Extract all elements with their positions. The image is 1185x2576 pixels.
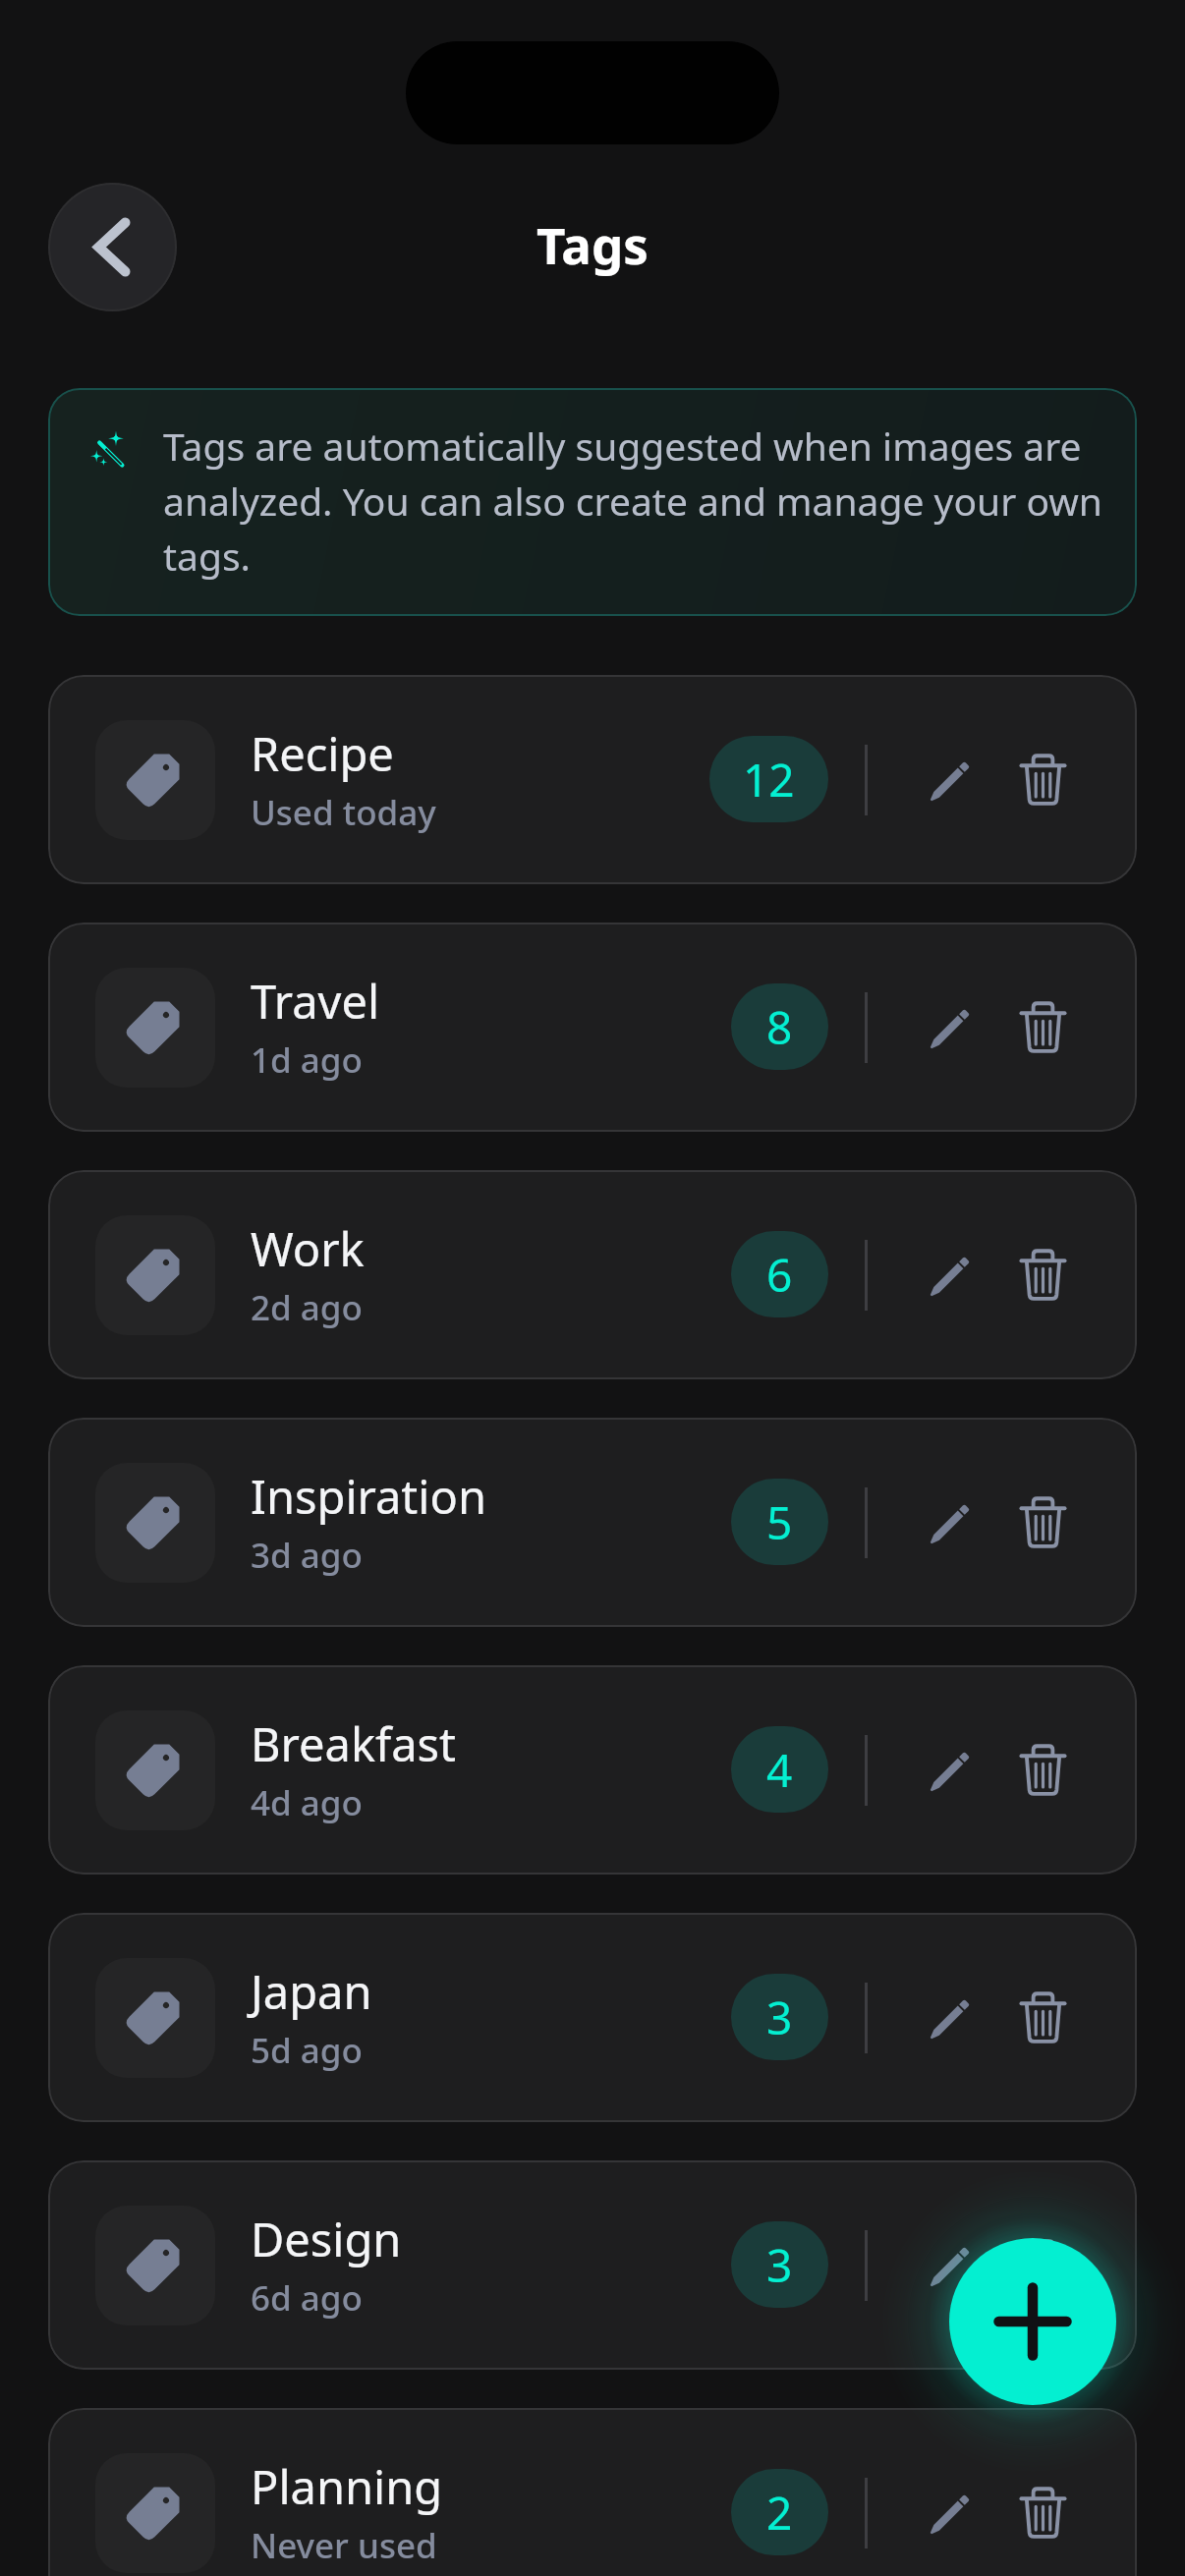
- button[interactable]: Japan: [48, 1913, 1137, 2122]
- button[interactable]: Edit: [902, 981, 996, 1076]
- staticText: Design: [251, 2208, 402, 2270]
- button[interactable]: Edit: [902, 2219, 996, 2314]
- button[interactable]: Back: [48, 183, 177, 311]
- button[interactable]: Delete: [995, 1722, 1090, 1817]
- staticText: Used today: [251, 789, 436, 836]
- button[interactable]: Edit: [902, 1724, 996, 1819]
- staticText: 3: [766, 1987, 793, 2048]
- button[interactable]: Delete: [995, 1475, 1090, 1569]
- button[interactable]: Edit: [902, 2467, 996, 2561]
- staticText: 6: [766, 1244, 793, 1306]
- staticText: 8: [766, 996, 793, 1058]
- button[interactable]: Breakfast: [48, 1665, 1137, 1875]
- staticText: 6d ago: [251, 2274, 363, 2322]
- staticText: Planning: [251, 2455, 443, 2518]
- staticText: 12: [743, 749, 795, 811]
- staticText: 2d ago: [251, 1284, 363, 1331]
- staticText: Tags are automatically suggested when im…: [163, 420, 1122, 582]
- staticText: Work: [251, 1217, 365, 1280]
- staticText: 5: [766, 1491, 793, 1553]
- staticText: Tags: [536, 210, 649, 278]
- staticText: Never used: [251, 2522, 437, 2569]
- button[interactable]: Design: [48, 2160, 1137, 2370]
- staticText: Recipe: [251, 722, 394, 785]
- button[interactable]: Delete: [995, 980, 1090, 1074]
- staticText: 4: [766, 1739, 793, 1801]
- staticText: Japan: [251, 1960, 372, 2023]
- button[interactable]: Edit: [902, 1229, 996, 1323]
- button[interactable]: Inspiration: [48, 1418, 1137, 1627]
- staticText: Inspiration: [251, 1465, 486, 1528]
- button[interactable]: Delete: [995, 2465, 1090, 2559]
- button[interactable]: Delete: [995, 2217, 1090, 2312]
- staticText: 3: [766, 2234, 793, 2296]
- button[interactable]: Edit: [902, 1477, 996, 1571]
- button[interactable]: Edit: [902, 1972, 996, 2066]
- staticText: 1d ago: [251, 1036, 363, 1084]
- staticText: Breakfast: [251, 1712, 457, 1775]
- button[interactable]: Delete: [995, 1227, 1090, 1321]
- staticText: 3d ago: [251, 1532, 363, 1579]
- button[interactable]: Recipe: [48, 675, 1137, 884]
- button[interactable]: Delete: [995, 1970, 1090, 2064]
- button[interactable]: Delete: [995, 732, 1090, 826]
- button[interactable]: Work: [48, 1170, 1137, 1379]
- staticText: 2: [766, 2482, 793, 2544]
- staticText: 5d ago: [251, 2027, 363, 2074]
- button[interactable]: Travel: [48, 923, 1137, 1132]
- staticText: Travel: [251, 970, 380, 1033]
- button[interactable]: Add tag: [949, 2238, 1116, 2405]
- button[interactable]: Edit: [902, 734, 996, 828]
- button[interactable]: Planning: [48, 2408, 1137, 2576]
- staticText: 4d ago: [251, 1779, 363, 1826]
